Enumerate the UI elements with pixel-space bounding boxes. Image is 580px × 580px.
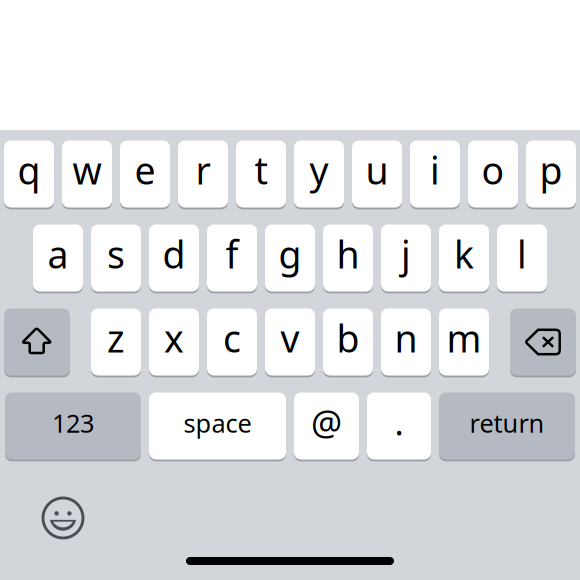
button[interactable]: f (207, 223, 257, 293)
staticText: a (47, 229, 68, 279)
button[interactable]: w (62, 139, 112, 209)
staticText: d (162, 229, 185, 279)
button[interactable]: Delete (510, 307, 576, 377)
button[interactable]: Emoji keyboard (0, 491, 90, 545)
button[interactable]: n (381, 307, 431, 377)
staticText: m (446, 313, 481, 363)
staticText: u (365, 145, 388, 195)
staticText: b (336, 313, 359, 363)
staticText: o (481, 145, 504, 195)
button[interactable]: c (207, 307, 257, 377)
button[interactable]: k (439, 223, 489, 293)
staticText: . (394, 399, 403, 445)
button[interactable]: i (410, 139, 460, 209)
staticText: t (254, 145, 267, 195)
button[interactable]: o (468, 139, 518, 209)
staticText: z (107, 313, 125, 363)
staticText: s (107, 229, 125, 279)
button[interactable]: t (236, 139, 286, 209)
staticText: h (336, 229, 359, 279)
button[interactable]: z (91, 307, 141, 377)
staticText: v (280, 313, 299, 363)
staticText: f (225, 229, 238, 279)
button[interactable]: . (367, 391, 431, 461)
staticText: l (517, 229, 527, 279)
staticText: space (183, 406, 251, 440)
button[interactable]: p (526, 139, 576, 209)
button[interactable]: y (294, 139, 344, 209)
staticText: @ (311, 399, 342, 445)
staticText: g (278, 229, 301, 279)
button[interactable]: g (265, 223, 315, 293)
staticText: i (430, 145, 440, 195)
staticText: r (195, 145, 210, 195)
button[interactable]: e (120, 139, 170, 209)
staticText: q (17, 145, 40, 195)
staticText: 123 (52, 406, 94, 440)
button[interactable]: u (352, 139, 402, 209)
button[interactable]: q (4, 139, 54, 209)
staticText: c (223, 313, 241, 363)
button[interactable]: v (265, 307, 315, 377)
button[interactable]: r (178, 139, 228, 209)
button[interactable]: j (381, 223, 431, 293)
button[interactable]: Shift (4, 307, 70, 377)
staticText: y (309, 145, 328, 195)
button[interactable]: x (149, 307, 199, 377)
staticText: w (72, 145, 101, 195)
button[interactable]: a (33, 223, 83, 293)
button[interactable]: b (323, 307, 373, 377)
button[interactable]: d (149, 223, 199, 293)
staticText: x (164, 313, 184, 363)
staticText: k (454, 229, 474, 279)
staticText: e (134, 145, 155, 195)
button[interactable]: return (439, 391, 575, 461)
staticText: p (539, 145, 562, 195)
staticText: return (469, 406, 544, 440)
button[interactable]: 123 (5, 391, 141, 461)
button[interactable]: m (439, 307, 489, 377)
button[interactable]: space (149, 391, 286, 461)
staticText: j (401, 229, 411, 279)
button[interactable]: @ (294, 391, 359, 461)
button[interactable]: l (497, 223, 547, 293)
staticText: n (394, 313, 417, 363)
button[interactable]: h (323, 223, 373, 293)
button[interactable]: s (91, 223, 141, 293)
